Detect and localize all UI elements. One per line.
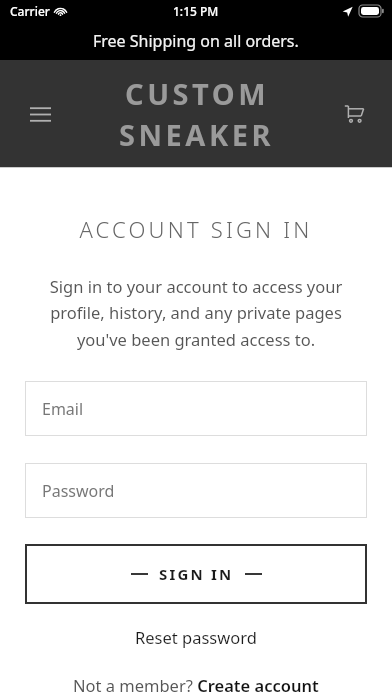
button[interactable]: Password (25, 463, 367, 518)
staticText: Password (42, 480, 115, 502)
staticText: Carrier (10, 3, 50, 19)
staticText: 1:15 PM (173, 3, 219, 19)
button[interactable]: Menu (18, 92, 62, 136)
staticText: SIGN IN (159, 564, 234, 584)
staticText: CUSTOM (125, 74, 269, 113)
button[interactable]: Shopping cart (332, 92, 376, 136)
button[interactable]: Email (25, 381, 367, 436)
staticText: Sign in to your account to access your p… (25, 275, 367, 351)
button[interactable]: Not a member? Create account (73, 674, 319, 696)
staticText: Reset password (135, 626, 257, 648)
staticText: SNEAKER (119, 115, 274, 154)
staticText: Free Shipping on all orders. (93, 30, 299, 52)
staticText: Email (42, 398, 84, 420)
button[interactable]: SIGN IN (25, 544, 367, 604)
staticText: ACCOUNT SIGN IN (79, 214, 313, 244)
button[interactable]: Reset password (135, 626, 257, 648)
staticText: Not a member? Create account (73, 674, 319, 696)
